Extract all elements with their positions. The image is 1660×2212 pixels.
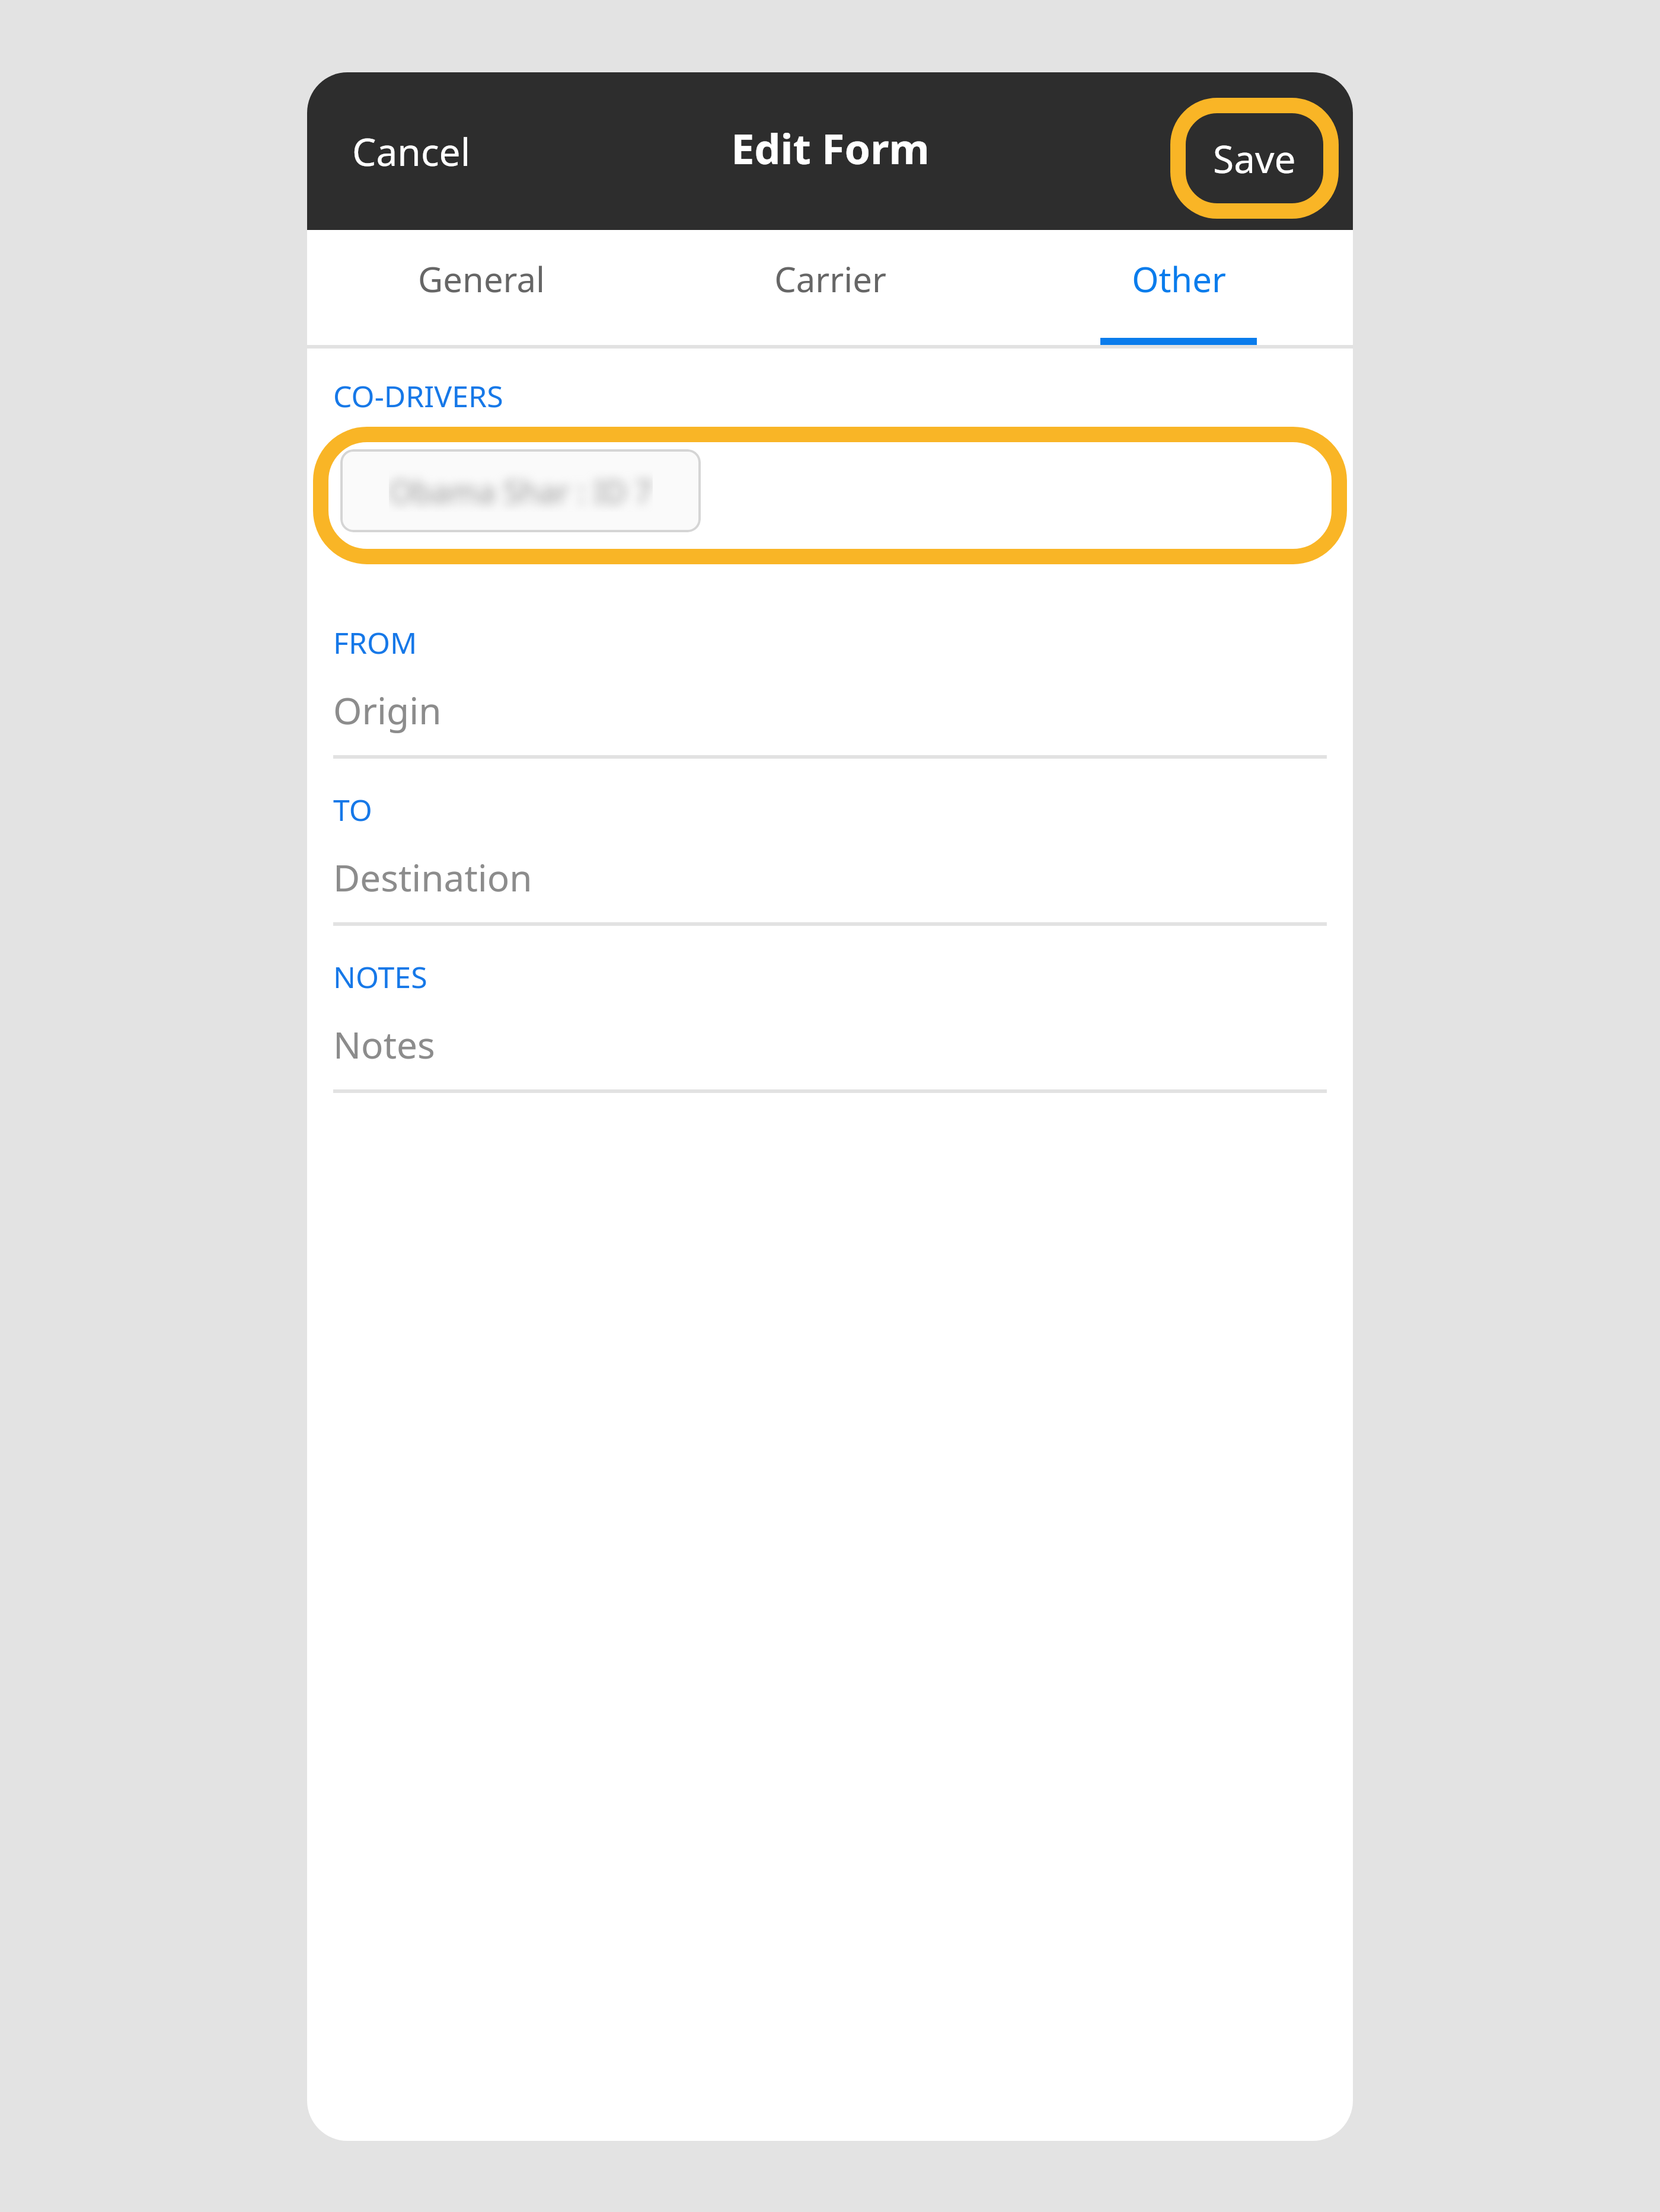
staticText: Origin: [333, 685, 442, 735]
button[interactable]: Obama Shar : ID 7: [340, 449, 701, 532]
button[interactable]: Carrier: [656, 230, 1004, 349]
button[interactable]: General: [307, 230, 656, 349]
button[interactable]: Obama Shar : ID 7: [307, 427, 1353, 564]
staticText: Save: [1213, 133, 1296, 184]
staticText: CO-DRIVERS: [333, 376, 503, 416]
button[interactable]: Cancel: [331, 111, 492, 191]
button[interactable]: NOTES: [307, 957, 1353, 1093]
staticText: TO: [333, 789, 372, 830]
button[interactable]: FROM: [307, 622, 1353, 759]
button[interactable]: TO: [307, 789, 1353, 926]
staticText: General: [418, 255, 545, 302]
staticText: Obama Shar : ID 7: [389, 470, 653, 512]
button[interactable]: Save: [1170, 98, 1339, 219]
staticText: Destination: [333, 852, 532, 902]
staticText: Notes: [333, 1019, 435, 1069]
button[interactable]: Other: [1004, 230, 1353, 349]
staticText: Edit Form: [731, 120, 930, 176]
staticText: Carrier: [774, 255, 886, 302]
staticText: Cancel: [352, 126, 471, 177]
staticText: FROM: [333, 622, 417, 663]
staticText: Other: [1132, 255, 1226, 302]
staticText: NOTES: [333, 957, 427, 997]
